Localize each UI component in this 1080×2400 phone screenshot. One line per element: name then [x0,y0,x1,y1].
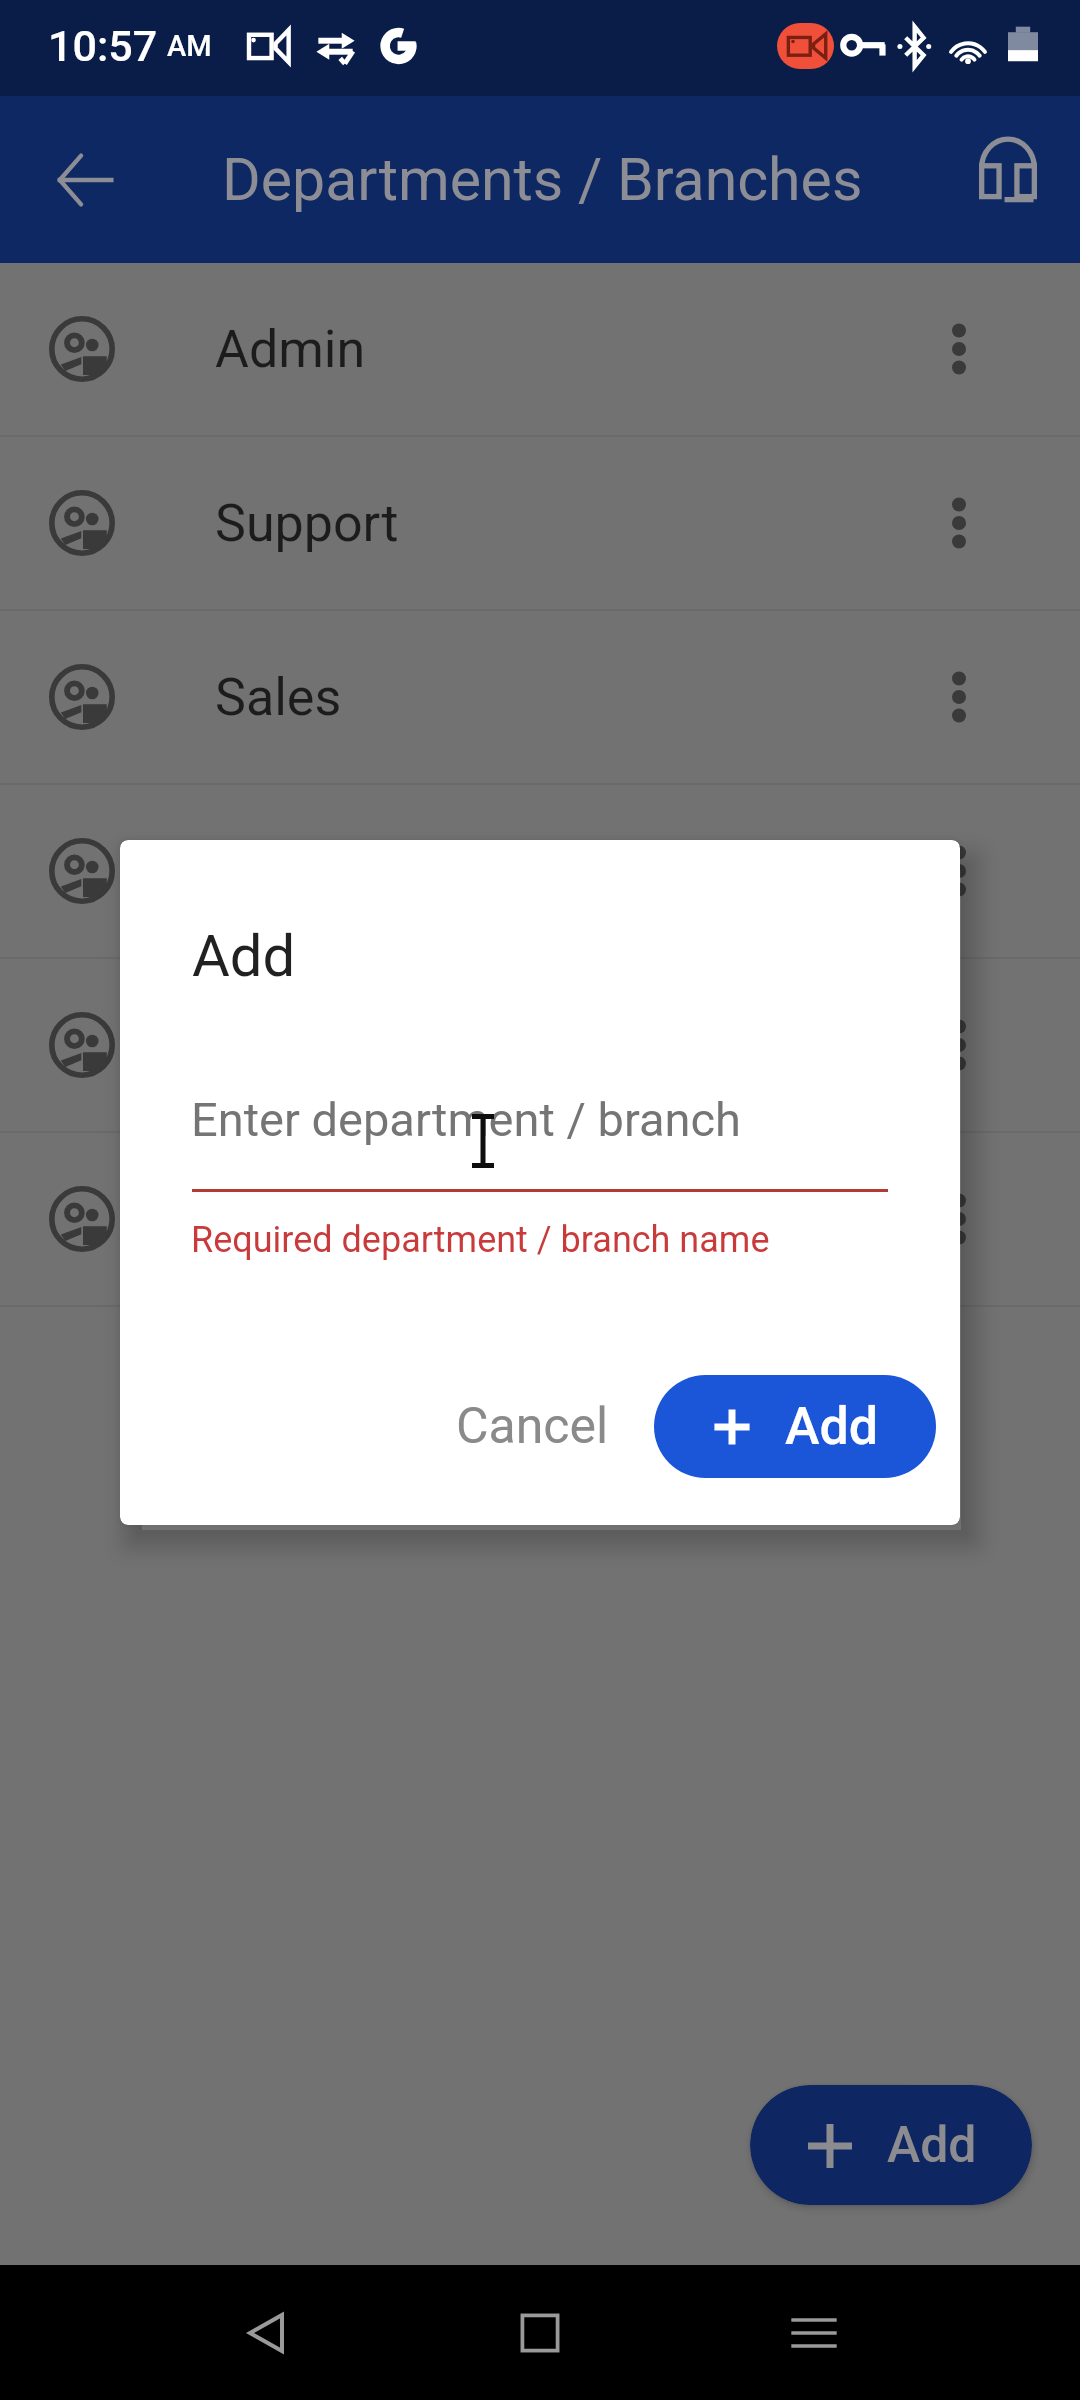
button[interactable]: Home [492,2285,588,2381]
button[interactable]: Support [956,130,1056,230]
button[interactable]: More options [911,997,1007,1093]
button[interactable]: Recents [766,2285,862,2381]
button[interactable]: Back [34,130,134,230]
button[interactable]: More options [911,1171,1007,1267]
staticText: HR [215,1189,285,1250]
staticText: Admin [215,319,366,380]
staticText: Support [215,493,399,554]
staticText: Add [785,1396,879,1457]
staticText: Cancel [456,1397,609,1456]
staticText: Required department / branch name [191,1219,770,1261]
button[interactable]: Add [654,1375,936,1478]
staticText: Sales [215,667,342,728]
staticText: Enter department / branch [191,1092,741,1147]
staticText: Departments / Branches [222,145,863,214]
button[interactable]: HR [0,1133,1080,1305]
button[interactable]: Back [218,2285,314,2381]
button[interactable]: Finance [0,959,1080,1131]
staticText: Add [887,2116,977,2175]
button[interactable]: More options [911,823,1007,919]
button[interactable]: Admin [0,263,1080,435]
button[interactable]: Support [0,437,1080,609]
staticText: Add [192,922,296,990]
button[interactable]: Add [750,2085,1032,2205]
button[interactable]: Sales [0,611,1080,783]
staticText: AM [167,29,212,63]
button[interactable]: More options [911,301,1007,397]
staticText: 10:57 [48,21,158,71]
button[interactable]: More options [911,649,1007,745]
button[interactable]: Cancel [430,1378,634,1474]
button[interactable]: Marketing [0,785,1080,957]
button[interactable]: More options [911,475,1007,571]
